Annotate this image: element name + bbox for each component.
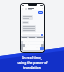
button[interactable]: Enter [40, 47, 44, 50]
button[interactable] [23, 26, 35, 31]
button[interactable]: Back [21, 4, 44, 52]
staticText: using the power of [17, 60, 48, 64]
button[interactable] [23, 16, 32, 19]
button[interactable]: Back [22, 8, 24, 10]
staticText: translation [23, 65, 41, 69]
button[interactable]: Back [22, 7, 43, 10]
button[interactable]: Send [22, 33, 43, 36]
staticText: In real time, [22, 55, 42, 59]
